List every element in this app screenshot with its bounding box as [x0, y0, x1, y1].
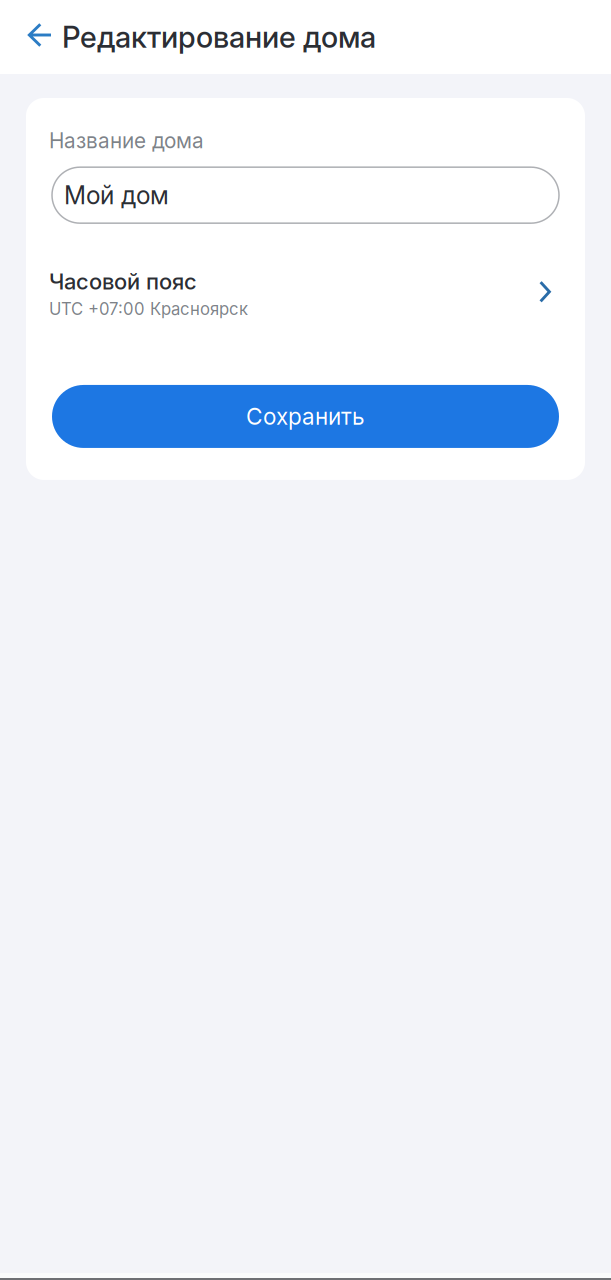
button[interactable]: Назад [14, 11, 62, 63]
staticText: Часовой пояс [49, 268, 197, 295]
staticText: Название дома [49, 128, 204, 153]
staticText: Сохранить [246, 403, 365, 430]
staticText: UTC +07:00 Красноярск [49, 299, 248, 319]
staticText: Редактирование дома [62, 19, 376, 55]
button[interactable]: Часовой пояс [49, 223, 562, 319]
button[interactable]: Сохранить [49, 385, 562, 448]
staticText: Мой дом [64, 180, 169, 210]
